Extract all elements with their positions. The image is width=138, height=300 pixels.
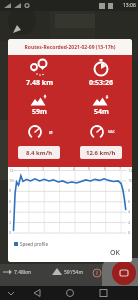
staticText: 7.48km xyxy=(14,269,32,276)
staticText: Routes-Recorded-2021-02-09 (13-17h) xyxy=(8,44,132,51)
staticText: 7.48 km xyxy=(26,78,53,88)
staticText: OK xyxy=(110,248,120,258)
staticText: 4 xyxy=(73,166,76,171)
staticText: 59m xyxy=(32,107,47,117)
staticText: 54m xyxy=(94,107,109,117)
staticText: 10 xyxy=(9,178,14,183)
staticText: 4 xyxy=(9,209,12,214)
staticText: 0 xyxy=(128,230,131,235)
staticText: 59'/54m xyxy=(64,269,84,276)
staticText: 10 xyxy=(128,178,132,183)
staticText: 12 xyxy=(128,168,132,173)
staticText: 2 xyxy=(42,166,45,171)
staticText: 7 xyxy=(119,166,122,171)
staticText: 2 xyxy=(128,220,131,225)
staticText: 1 xyxy=(27,166,30,171)
staticText: 4 xyxy=(128,209,131,214)
staticText: 13:06 xyxy=(123,2,136,9)
staticText: MAX xyxy=(108,130,115,134)
staticText: 8 xyxy=(9,188,12,193)
button[interactable]: OK xyxy=(101,246,129,260)
staticText: 0:53:26 xyxy=(89,78,113,88)
staticText: 6 xyxy=(9,199,12,204)
staticText: 6 xyxy=(104,166,107,171)
staticText: 5 xyxy=(88,166,91,171)
staticText: ø xyxy=(49,128,53,136)
staticText: 2 xyxy=(9,220,12,225)
staticText: 8.4 km/h xyxy=(26,149,53,157)
button[interactable] xyxy=(112,261,136,285)
staticText: 3 xyxy=(58,166,61,171)
staticText: 6 xyxy=(128,199,131,204)
staticText: Speed profile xyxy=(20,241,48,247)
staticText: 12.6 km/h xyxy=(86,149,116,157)
staticText: 0 xyxy=(9,230,12,235)
staticText: 12 xyxy=(9,168,14,173)
staticText: 8 xyxy=(128,188,131,193)
